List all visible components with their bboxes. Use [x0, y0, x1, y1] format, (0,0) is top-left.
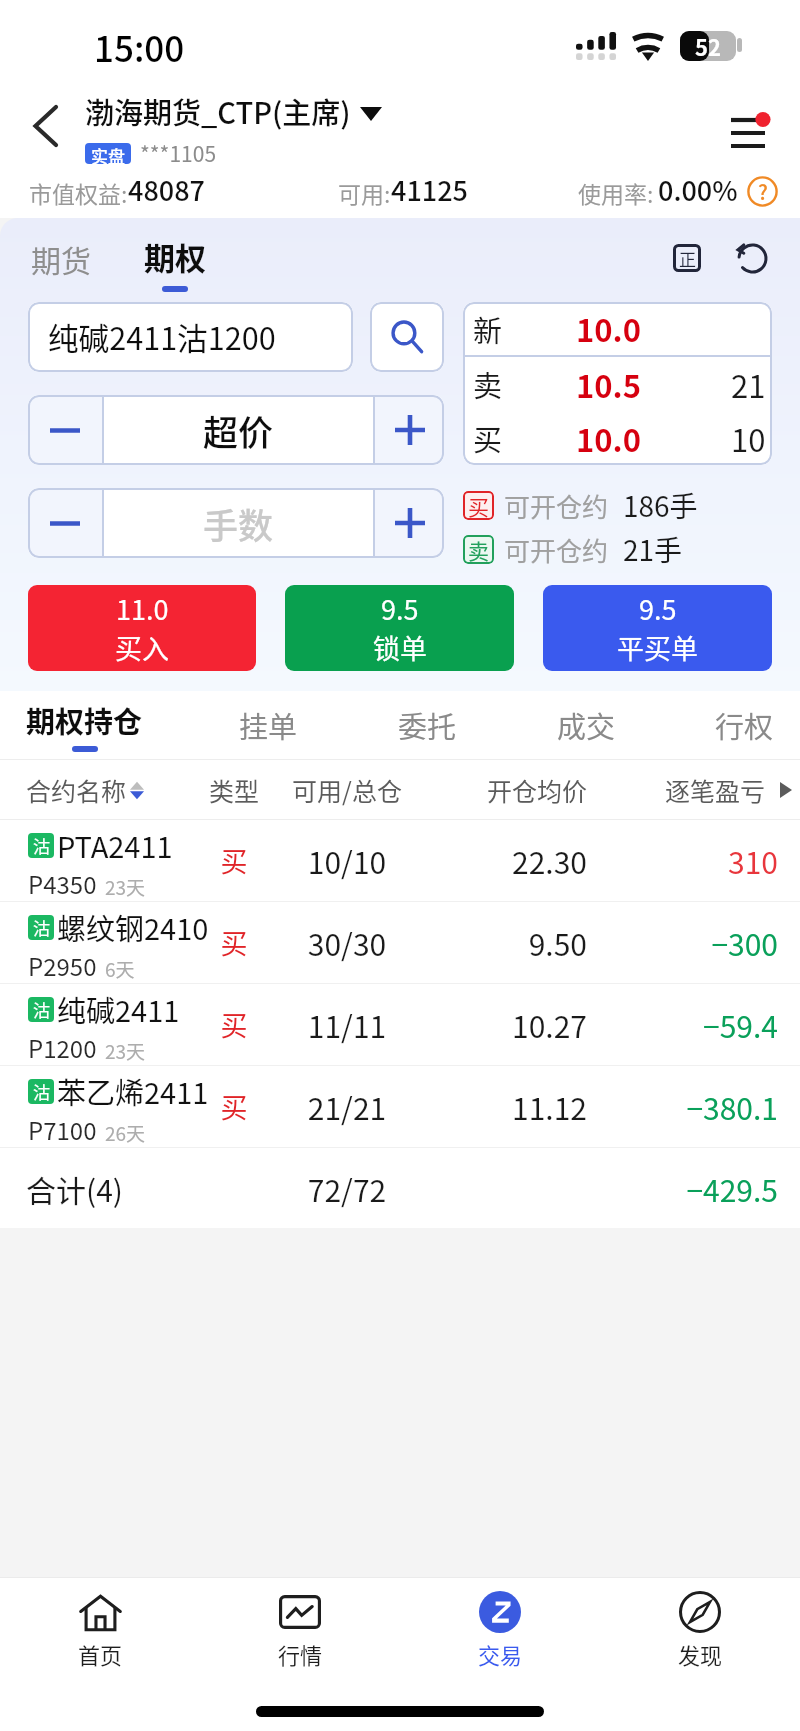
staticText: 9.5 — [639, 589, 677, 628]
staticText: 30/30 — [263, 921, 431, 964]
staticText: P7100 — [28, 1112, 97, 1147]
button[interactable]: 沽 — [0, 984, 800, 1065]
button[interactable]: 手数 — [104, 488, 373, 558]
button[interactable]: 9.5 — [543, 585, 772, 671]
button[interactable]: 卖 — [463, 529, 772, 570]
staticText: P2950 — [28, 948, 97, 983]
staticText: 可用: — [338, 176, 391, 209]
button[interactable]: 行情 — [200, 1578, 400, 1681]
staticText: 11.0 — [116, 589, 169, 628]
staticText: 26天 — [105, 1119, 146, 1147]
staticText: 买入 — [115, 628, 169, 667]
staticText: 15:00 — [94, 21, 185, 72]
staticText: 9.5 — [381, 589, 419, 628]
staticText: 6天 — [105, 955, 135, 983]
staticText: 锁单 — [373, 628, 427, 667]
staticText: 卖 — [473, 363, 503, 405]
staticText: 买 — [205, 923, 263, 962]
staticText: 正 — [679, 246, 696, 271]
button[interactable]: 沽 — [0, 820, 800, 901]
staticText: P4350 — [28, 866, 97, 901]
button[interactable]: 交易 — [400, 1578, 600, 1681]
staticText: 41125 — [391, 170, 468, 209]
button[interactable]: Decrease — [28, 488, 102, 558]
staticText: 期权持仓 — [26, 699, 143, 741]
staticText: 可开仓约 — [504, 531, 609, 569]
button[interactable]: 发现 — [600, 1578, 800, 1681]
button[interactable]: Decrease — [28, 395, 102, 465]
staticText: ? — [758, 177, 768, 206]
staticText: 行权 — [715, 704, 774, 746]
staticText: 市值权益: — [29, 176, 128, 209]
button[interactable]: Refresh — [730, 236, 774, 280]
staticText: ***1105 — [140, 138, 217, 168]
button[interactable]: 纯碱2411沽1200 — [28, 302, 353, 372]
staticText: 卖 — [468, 535, 489, 564]
button[interactable]: 9.5 — [285, 585, 514, 671]
staticText: 超价 — [203, 405, 274, 456]
staticText: 21手 — [623, 529, 683, 570]
staticText: 可用/总仓 — [263, 772, 431, 808]
staticText: 新 — [473, 308, 503, 350]
button[interactable]: 期货 — [22, 234, 100, 283]
button[interactable]: 11.0 — [28, 585, 256, 671]
staticText: 挂单 — [239, 704, 298, 746]
staticText: 10.0 — [576, 306, 641, 351]
staticText: 11/11 — [263, 1003, 431, 1046]
button[interactable]: 成交 — [516, 691, 656, 759]
button[interactable]: 首页 — [0, 1578, 200, 1681]
staticText: 10.0 — [576, 416, 641, 461]
staticText: 成交 — [557, 704, 616, 746]
staticText: 平买单 — [617, 628, 698, 667]
staticText: 行情 — [278, 1638, 323, 1670]
button[interactable]: Increase — [375, 395, 444, 465]
button[interactable]: Back — [16, 97, 74, 155]
button[interactable]: Menu — [723, 104, 781, 158]
button[interactable]: Mark — [665, 236, 709, 280]
button[interactable]: 行权 — [674, 691, 800, 759]
button[interactable]: 委托 — [357, 691, 497, 759]
staticText: 手数 — [203, 498, 274, 549]
staticText: 苯乙烯2411 — [57, 1070, 209, 1112]
staticText: 310 — [587, 839, 778, 882]
staticText: 0.00% — [658, 170, 738, 209]
staticText: 48087 — [128, 170, 205, 209]
button[interactable]: 沽 — [0, 1066, 800, 1147]
staticText: 21/21 — [263, 1085, 431, 1128]
staticText: 买 — [205, 841, 263, 880]
button[interactable]: Search — [370, 302, 444, 372]
staticText: 买 — [205, 1005, 263, 1044]
staticText: 186手 — [623, 485, 698, 526]
staticText: −59.4 — [587, 1003, 778, 1046]
staticText: −380.1 — [587, 1085, 778, 1128]
staticText: 22.30 — [431, 839, 587, 882]
button[interactable]: 期权持仓 — [14, 691, 154, 759]
staticText: 委托 — [398, 704, 457, 746]
button[interactable]: Increase — [375, 488, 444, 558]
staticText: 72/72 — [263, 1167, 431, 1210]
button[interactable]: 超价 — [104, 395, 373, 465]
staticText: 10.27 — [431, 1003, 587, 1046]
button[interactable]: 买 — [463, 485, 772, 526]
staticText: 可开仓约 — [504, 487, 609, 525]
staticText: 买 — [473, 417, 503, 459]
staticText: 买 — [468, 491, 489, 520]
staticText: 期货 — [31, 237, 91, 280]
button[interactable]: 期权 — [141, 234, 209, 292]
staticText: −300 — [587, 921, 778, 964]
staticText: 期权 — [144, 234, 206, 279]
button[interactable]: 挂单 — [198, 691, 338, 759]
button[interactable]: Help — [747, 176, 778, 207]
button[interactable]: 沽 — [0, 902, 800, 983]
staticText: 实盘 — [91, 143, 125, 164]
staticText: 使用率: — [578, 176, 654, 209]
staticText: 合计(4) — [26, 1167, 205, 1210]
staticText: −429.5 — [587, 1167, 778, 1210]
staticText: 买 — [205, 1087, 263, 1126]
staticText: 10/10 — [263, 839, 431, 882]
staticText: 螺纹钢2410 — [57, 906, 209, 948]
staticText: 11.12 — [431, 1085, 587, 1128]
staticText: 9.50 — [431, 921, 587, 964]
staticText: 交易 — [478, 1638, 523, 1670]
staticText: 沽 — [33, 997, 50, 1022]
